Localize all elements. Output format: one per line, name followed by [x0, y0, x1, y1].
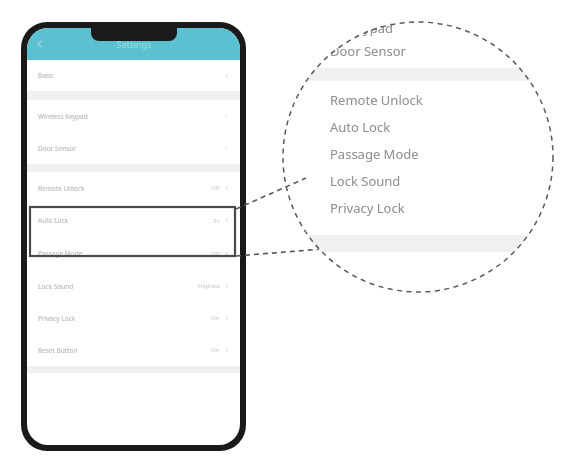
button[interactable]: Passage Mode: [330, 145, 419, 163]
staticText: Lock Sound: [38, 282, 74, 291]
button[interactable]: Door Sensor: [27, 132, 240, 164]
staticText: On: [211, 346, 220, 354]
staticText: Keypad: [348, 21, 394, 37]
staticText: Remote Unlock: [38, 184, 85, 193]
staticText: Wireless Keypad: [38, 112, 88, 121]
button[interactable]: Back: [33, 37, 47, 51]
button[interactable]: Passage Mode: [27, 237, 240, 270]
button[interactable]: Auto Lock: [330, 118, 391, 136]
staticText: Settings: [116, 38, 152, 50]
button[interactable]: Remote Unlock: [27, 172, 240, 204]
staticText: Door Sensor: [330, 42, 406, 60]
button[interactable]: Wireless Keypad: [27, 100, 240, 132]
staticText: Reset Button: [38, 346, 78, 355]
staticText: Highest: [198, 282, 220, 290]
button[interactable]: Privacy Lock: [27, 302, 240, 334]
staticText: Privacy Lock: [38, 314, 76, 323]
button[interactable]: Basic: [27, 60, 240, 91]
button[interactable]: Reset Button: [27, 334, 240, 366]
staticText: Passage Mode: [38, 249, 83, 258]
staticText: Basic: [38, 71, 54, 80]
staticText: 5s: [213, 217, 220, 225]
button[interactable]: Lock Sound: [330, 172, 401, 190]
staticText: Auto Lock: [38, 216, 69, 225]
staticText: Off: [211, 250, 220, 258]
staticText: On: [211, 314, 220, 322]
button[interactable]: Auto Lock: [27, 204, 240, 237]
button[interactable]: Lock Sound: [27, 270, 240, 302]
staticText: Off: [211, 184, 220, 192]
button[interactable]: Remote Unlock: [330, 91, 423, 109]
staticText: Door Sensor: [38, 144, 76, 153]
button[interactable]: Privacy Lock: [330, 199, 405, 217]
